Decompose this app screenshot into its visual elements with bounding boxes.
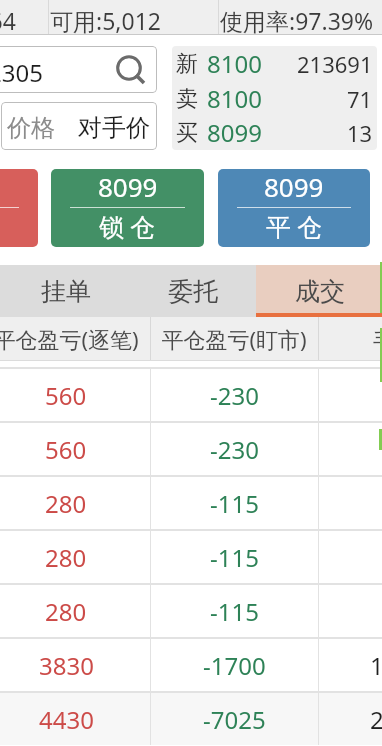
button[interactable]: 8099 xyxy=(0,169,38,247)
button[interactable]: 8099 xyxy=(218,169,370,247)
staticText: 可用:5,012 xyxy=(50,5,161,36)
button[interactable]: 280 xyxy=(0,531,382,583)
button[interactable]: 280 xyxy=(0,477,382,529)
staticText: 15,64 xyxy=(0,5,16,36)
staticText: 挂单 xyxy=(41,276,91,307)
staticText: 280 xyxy=(45,487,87,520)
button[interactable]: 委托 xyxy=(129,265,256,317)
staticText: 平仓盈亏(逐笔) xyxy=(0,324,139,354)
other: Search xyxy=(114,53,146,85)
staticText: 卖 xyxy=(176,85,198,113)
staticText: 8099 xyxy=(207,116,262,149)
staticText: -115 xyxy=(210,487,259,520)
staticText: 3830 xyxy=(39,649,94,682)
staticText: 280 xyxy=(45,595,87,628)
staticText: -1700 xyxy=(203,649,266,682)
staticText: 委托 xyxy=(168,276,218,307)
staticText: -230 xyxy=(210,379,259,412)
button[interactable]: 挂单 xyxy=(2,265,129,317)
staticText: 71 xyxy=(347,84,373,114)
staticText: 锁 仓 xyxy=(99,209,156,243)
staticText: 手数 xyxy=(373,328,382,356)
staticText: 买 xyxy=(176,119,198,147)
staticText: 平仓盈亏(盯市) xyxy=(161,324,307,354)
staticText: 成交 xyxy=(295,276,345,307)
staticText: 560 xyxy=(45,433,87,466)
staticText: -115 xyxy=(210,595,259,628)
staticText: 价格 xyxy=(7,113,55,143)
button[interactable]: 4430 xyxy=(0,693,382,745)
button[interactable]: 8099 xyxy=(51,169,204,247)
staticText: 280 xyxy=(45,541,87,574)
staticText: 使用率:97.39% xyxy=(220,5,374,36)
button[interactable]: 2305 xyxy=(0,46,157,93)
button[interactable]: 3830 xyxy=(0,639,382,691)
staticText: 13 xyxy=(347,118,373,148)
staticText: 对手价 xyxy=(78,113,150,143)
staticText: 8099 xyxy=(264,169,324,204)
button[interactable]: 280 xyxy=(0,585,382,637)
button[interactable]: 价格 xyxy=(1,102,157,150)
staticText: 1 xyxy=(370,649,382,682)
button[interactable]: 成交 xyxy=(256,265,382,317)
button[interactable]: 560 xyxy=(0,369,382,421)
staticText: -230 xyxy=(210,433,259,466)
staticText: 8100 xyxy=(207,82,262,115)
staticText: 4430 xyxy=(39,703,94,736)
staticText: 560 xyxy=(45,379,87,412)
staticText: -7025 xyxy=(203,703,266,736)
staticText: 新 xyxy=(176,50,198,78)
staticText: -115 xyxy=(210,541,259,574)
staticText: 平 仓 xyxy=(266,209,323,243)
staticText: 213691 xyxy=(297,49,373,79)
staticText: 8099 xyxy=(98,169,158,204)
staticText: 2305 xyxy=(0,56,43,89)
button[interactable]: 560 xyxy=(0,423,382,475)
staticText: 8100 xyxy=(207,47,262,80)
staticText: 2 xyxy=(370,703,382,736)
